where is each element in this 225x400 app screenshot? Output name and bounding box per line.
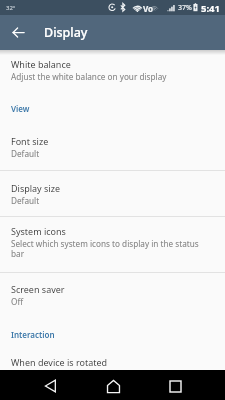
button[interactable]: View <box>0 103 225 114</box>
staticText: Select which system icons to display in … <box>11 238 203 259</box>
staticText: Font size <box>11 135 49 147</box>
button[interactable]: White balance <box>0 50 225 82</box>
staticText: Default <box>11 195 40 206</box>
button[interactable]: When device is rotated <box>0 356 225 368</box>
button[interactable]: Font size <box>0 135 225 159</box>
staticText: Display <box>44 24 88 41</box>
staticText: 37% <box>178 3 192 13</box>
staticText: Adjust the white balance on your display <box>11 71 167 82</box>
staticText: Default <box>11 148 40 159</box>
staticText: Screen saver <box>11 283 65 295</box>
staticText: Interaction <box>11 329 55 340</box>
button[interactable]: Navigate up <box>0 15 36 50</box>
staticText: 32° <box>6 4 16 12</box>
staticText: Vo <box>143 3 154 14</box>
staticText: System icons <box>11 225 66 237</box>
staticText: View <box>11 103 30 114</box>
button[interactable]: Recent apps <box>163 371 188 400</box>
button[interactable]: System icons <box>0 217 225 259</box>
staticText: Display size <box>11 182 60 194</box>
staticText: Off <box>11 296 24 307</box>
button[interactable]: Display size <box>0 171 225 206</box>
staticText: White balance <box>11 58 71 70</box>
staticText: When device is rotated <box>11 356 108 368</box>
button[interactable]: Screen saver <box>0 273 225 307</box>
button[interactable]: Back <box>38 371 63 400</box>
staticText: 5:41 <box>201 2 220 15</box>
button[interactable]: Home <box>100 371 126 400</box>
